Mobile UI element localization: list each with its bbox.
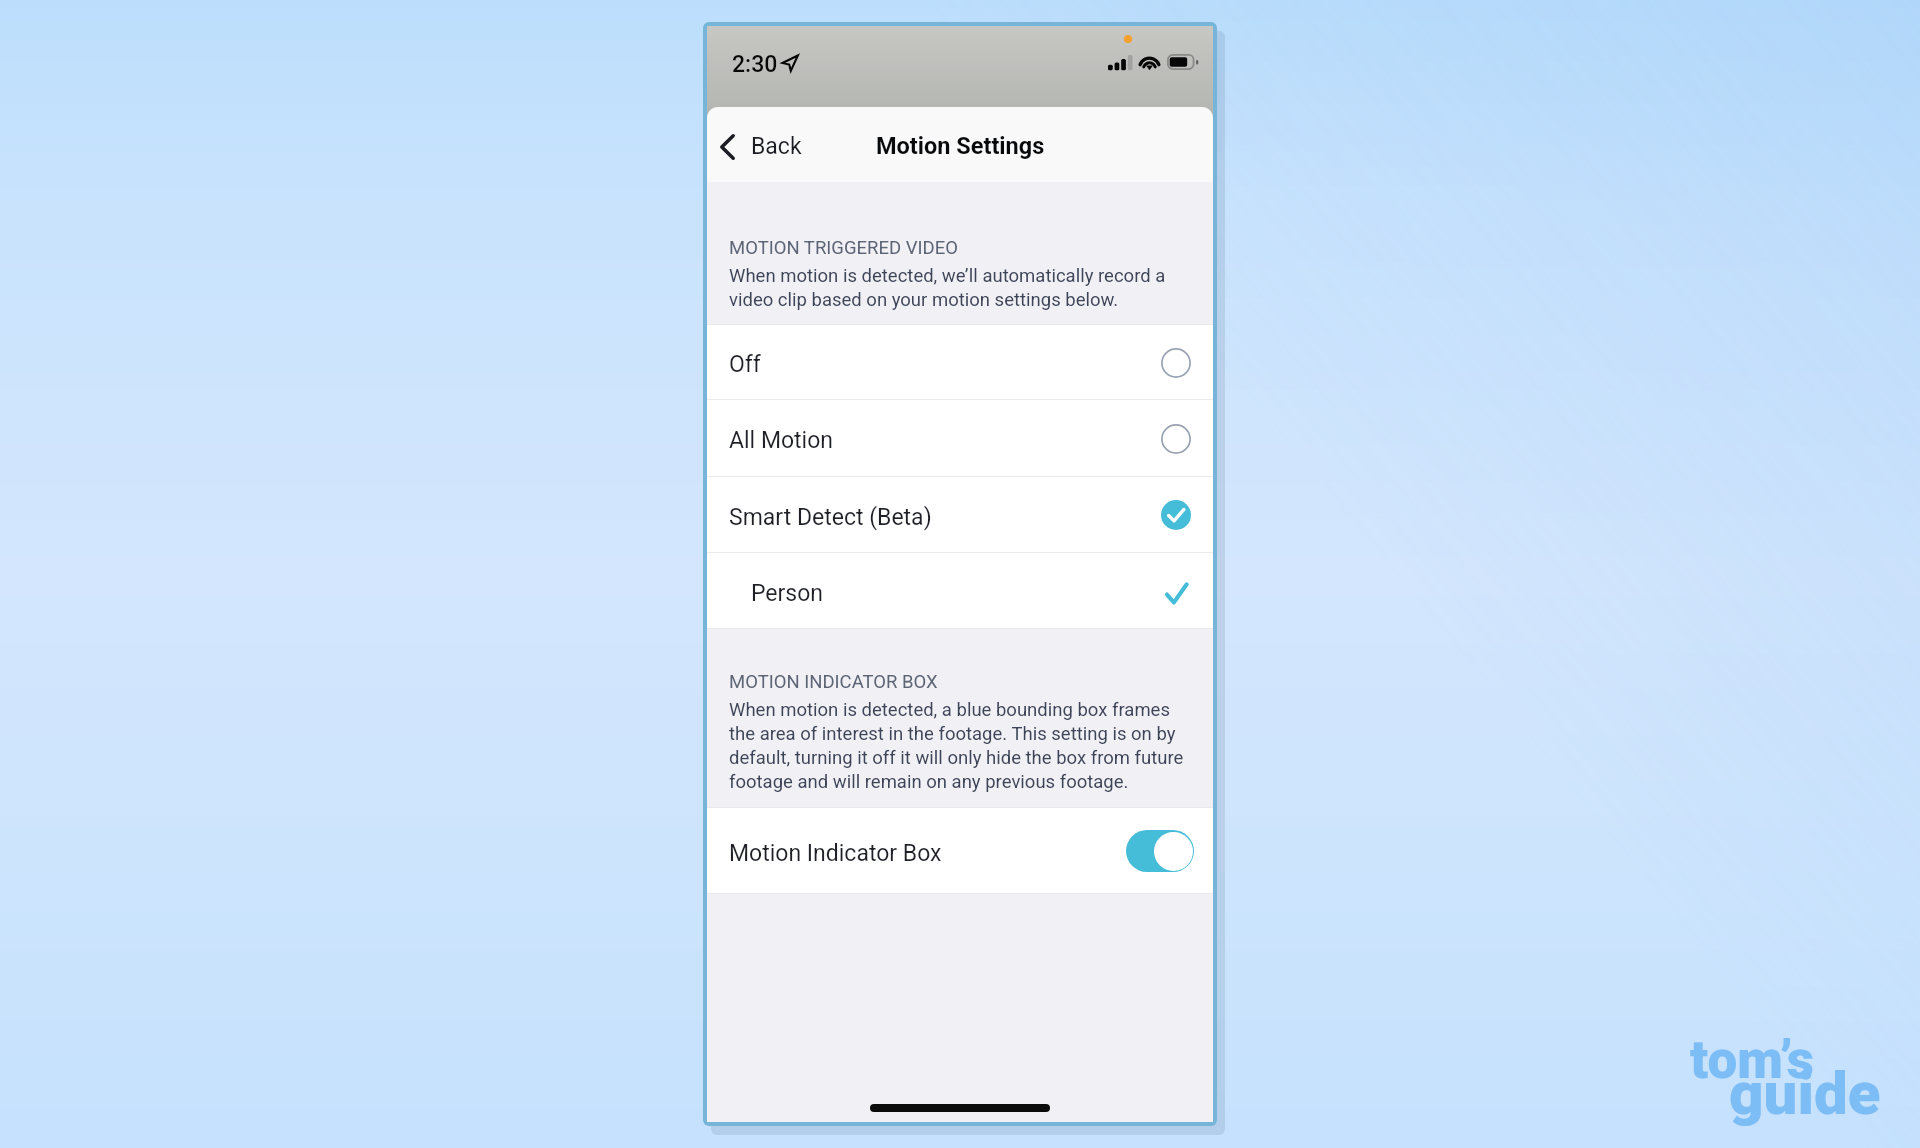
staticText: When motion is detected, a blue bounding… (729, 697, 1199, 793)
staticText: All Motion (729, 427, 834, 454)
staticText: Smart Detect (Beta) (729, 504, 932, 531)
staticText: tom’s (1690, 1029, 1814, 1091)
staticText: MOTION TRIGGERED VIDEO (729, 237, 958, 259)
other: Wi-Fi (1139, 53, 1160, 70)
button[interactable]: Smart Detect (Beta) (707, 477, 1213, 553)
button[interactable]: Off (707, 325, 1213, 400)
button[interactable]: Person (707, 553, 1213, 629)
button[interactable]: Back (713, 122, 809, 169)
other: Location services active (782, 55, 798, 71)
staticText: Back (751, 133, 802, 160)
staticText: 2:30 (732, 51, 778, 78)
staticText: When motion is detected, we’ll automatic… (729, 263, 1199, 311)
button[interactable]: Motion Indicator Box (707, 808, 1213, 894)
button[interactable]: All Motion (707, 400, 1213, 477)
other: Cellular signal (1108, 55, 1133, 71)
button[interactable]: Motion Indicator Box, on (1126, 830, 1194, 872)
staticText: Person (751, 580, 824, 607)
staticText: guide (1729, 1058, 1881, 1128)
staticText: Motion Settings (876, 132, 1045, 160)
staticText: MOTION INDICATOR BOX (729, 671, 938, 693)
staticText: Off (729, 351, 761, 378)
staticText: Motion Indicator Box (729, 840, 942, 867)
other: Battery (1167, 54, 1199, 70)
